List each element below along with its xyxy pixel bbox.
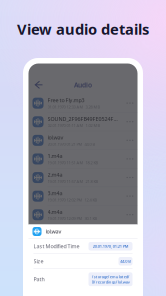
- staticText: Free to Fly.mp3: [47, 97, 84, 104]
- button[interactable]: Free to Fly.mp3: [28, 94, 137, 113]
- button[interactable]: 4.m4a: [28, 206, 137, 224]
- staticText: /storage/emulated/0/recordings/lol.wav: [91, 274, 129, 284]
- staticText: 01.01.1970 12:33 AM 3.28 MB: [47, 104, 100, 110]
- button[interactable]: lol.wav: [28, 131, 137, 150]
- staticText: 44.0 B: [120, 259, 131, 264]
- staticText: View audio details: [17, 19, 149, 39]
- staticText: Audio: [74, 80, 92, 89]
- staticText: 20.01.1970 01:21 PM 44.0 B: [47, 141, 95, 147]
- button[interactable]: 2.m4a: [28, 168, 137, 187]
- button[interactable]: 3.m4a: [28, 187, 137, 206]
- staticText: SOUND_2F96FB49FE0524FF7B2D3Bc…: [47, 115, 117, 122]
- button[interactable]: SOUND_2F96FB49FE0524FF7B2D3Bc…: [28, 113, 137, 131]
- staticText: 2.m4a: [47, 171, 62, 178]
- button[interactable]: Back: [31, 78, 45, 92]
- staticText: 4.m4a: [47, 208, 62, 215]
- staticText: 19.01.1970 11:51 AM 18.2 KB: [47, 160, 98, 165]
- staticText: 19.01.1970 12:09 PM 30.1 KB: [47, 216, 97, 221]
- staticText: 19.01.1970 11:57 AM 21.8 KB: [47, 179, 98, 184]
- staticText: lol.wav: [45, 228, 61, 235]
- staticText: Last Modified Time: [33, 243, 79, 250]
- button[interactable]: 1.m4a: [28, 150, 137, 168]
- staticText: 02.01.1970 01:11 AM 1.02 MB: [47, 123, 100, 128]
- staticText: Path: [33, 276, 44, 283]
- staticText: Size: [33, 258, 43, 265]
- staticText: 19.01.1970 12:02 PM 12.4 KB: [47, 197, 97, 203]
- staticText: 20.01.1970, 01:21 PM: [92, 244, 128, 249]
- staticText: lol.wav: [47, 134, 63, 141]
- staticText: 3.m4a: [47, 190, 62, 197]
- staticText: 1.m4a: [47, 152, 62, 160]
